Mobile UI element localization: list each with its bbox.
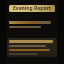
button[interactable] (9, 53, 55, 55)
button[interactable]: Evening Report (7, 4, 57, 13)
staticText: Evening Report (10, 5, 54, 12)
button[interactable] (7, 38, 57, 57)
button[interactable] (9, 49, 55, 51)
button[interactable] (9, 45, 55, 47)
button[interactable] (9, 40, 55, 43)
button[interactable] (7, 21, 57, 28)
